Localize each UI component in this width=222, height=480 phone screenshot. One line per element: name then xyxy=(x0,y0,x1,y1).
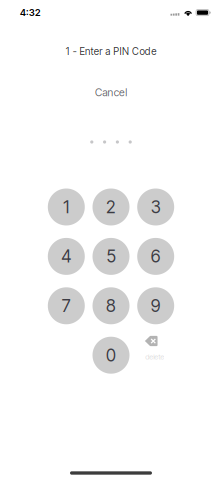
button[interactable]: 6 xyxy=(137,238,174,275)
button[interactable]: 2 xyxy=(92,188,129,225)
button[interactable]: 3 xyxy=(137,188,174,225)
button[interactable]: Cancel xyxy=(85,82,137,103)
staticText: 4 xyxy=(61,246,71,267)
staticText: 1 xyxy=(63,197,69,217)
staticText: 0 xyxy=(106,345,116,365)
button[interactable]: 5 xyxy=(92,238,129,275)
staticText: 8 xyxy=(106,295,116,316)
staticText: 1 - Enter a PIN Code xyxy=(66,45,156,57)
button[interactable]: 8 xyxy=(92,287,129,324)
staticText: 5 xyxy=(106,246,115,267)
button[interactable]: 9 xyxy=(137,287,174,324)
staticText: 9 xyxy=(151,295,161,316)
staticText: 3 xyxy=(151,197,161,217)
button[interactable]: 4 xyxy=(48,238,85,275)
staticText: 6 xyxy=(151,246,161,267)
button[interactable]: Delete xyxy=(137,337,174,374)
button[interactable]: 7 xyxy=(48,287,85,324)
staticText: delete xyxy=(145,352,164,361)
staticText: 4:32 xyxy=(20,7,41,18)
button[interactable]: 0 xyxy=(92,337,129,374)
button[interactable]: 1 xyxy=(48,188,85,225)
staticText: 7 xyxy=(62,295,71,316)
staticText: Cancel xyxy=(95,86,127,99)
staticText: 2 xyxy=(106,197,116,217)
